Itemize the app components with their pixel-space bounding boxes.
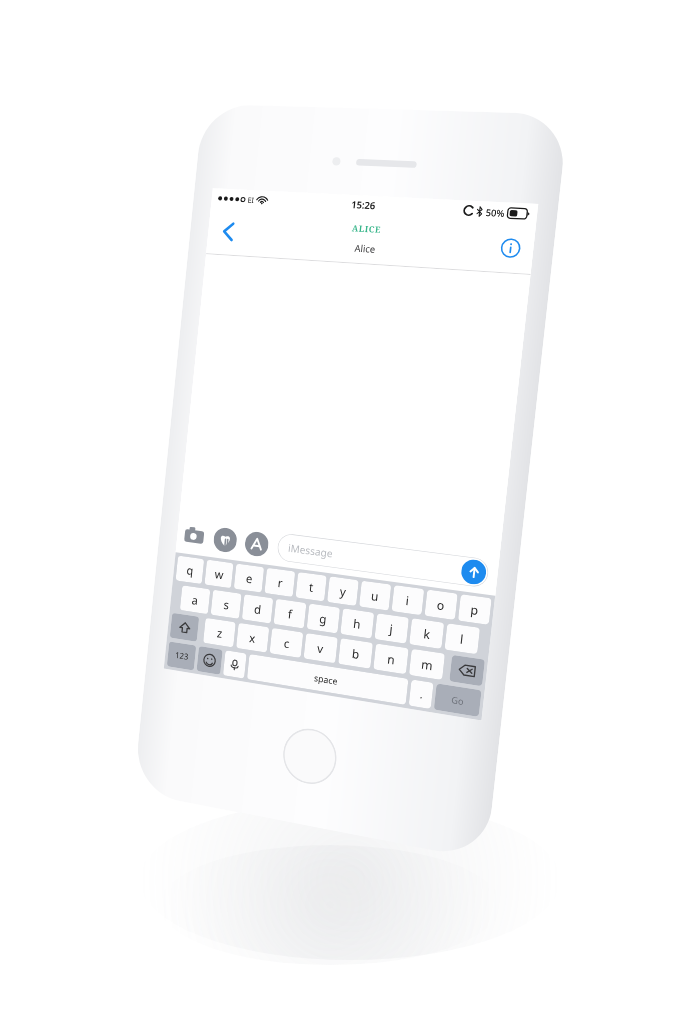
button[interactable]: Backspace [449,655,485,686]
staticText: 123 [175,649,189,663]
button[interactable]: Details [494,232,526,263]
button[interactable]: o [424,589,458,620]
staticText: EI [247,195,255,205]
staticText: iMessage [287,541,334,561]
staticText: b [351,645,361,662]
staticText: z [216,625,223,641]
button[interactable]: e [234,563,264,593]
button[interactable]: Home [280,724,339,789]
staticText: o [436,596,446,613]
staticText: 15:26 [351,198,377,212]
staticText: Alice [354,242,376,256]
button[interactable]: 123 [167,641,196,670]
staticText: x [249,629,257,646]
button[interactable]: c [269,628,303,658]
button[interactable]: x [236,623,269,653]
button[interactable]: z [203,618,236,647]
button[interactable]: Back [210,214,245,249]
button[interactable]: a [180,585,210,614]
button[interactable]: ALICE [349,222,382,256]
button[interactable]: n [373,643,409,674]
button[interactable]: Emoji [196,646,223,675]
staticText: j [389,620,394,637]
button[interactable]: space [247,654,408,705]
button[interactable]: f [273,599,306,629]
button[interactable]: y [327,576,359,606]
button[interactable]: r [264,568,295,597]
button[interactable]: d [242,594,273,624]
staticText: p [470,601,480,618]
button[interactable]: g [307,603,340,633]
staticText: v [316,640,325,656]
staticText: y [339,583,348,600]
staticText: r [277,574,283,590]
staticText: n [387,650,396,667]
button[interactable]: b [338,638,373,669]
button[interactable]: k [409,618,444,649]
staticText: u [370,587,380,604]
button[interactable]: p [458,594,492,625]
button[interactable]: Send [460,558,487,586]
button[interactable]: s [211,590,242,619]
button[interactable]: t [295,572,327,601]
staticText: . [419,687,424,702]
button[interactable]: v [303,633,338,663]
staticText: Go [451,693,464,707]
button[interactable]: h [340,608,374,639]
button[interactable]: i [391,585,424,615]
button[interactable]: . [409,679,434,709]
button[interactable]: l [444,623,480,654]
staticText: w [214,566,225,582]
button[interactable]: w [204,559,233,588]
staticText: m [420,655,434,673]
button[interactable]: App Store [244,530,270,558]
staticText: 50% [485,206,505,219]
staticText: h [352,615,362,632]
staticText: s [223,596,230,612]
button[interactable]: Shift [170,613,199,642]
staticText: d [253,601,262,617]
staticText: e [245,570,253,586]
button[interactable]: Go [434,683,482,717]
button[interactable]: iMessage [276,533,490,588]
button[interactable]: q [175,556,204,584]
staticText: t [308,578,315,595]
staticText: l [459,630,465,647]
staticText: a [191,592,199,608]
button[interactable]: u [359,581,391,611]
staticText: q [186,562,195,578]
staticText: g [319,610,328,627]
staticText: f [287,605,294,622]
button[interactable]: Camera [182,522,207,549]
button[interactable]: j [374,613,409,644]
button[interactable]: Dictation [223,650,247,679]
staticText: space [314,671,339,687]
staticText: ALICE [351,222,382,236]
staticText: i [405,592,411,608]
button[interactable]: m [409,649,445,680]
button[interactable]: Digital Touch [212,526,238,554]
staticText: k [423,625,431,642]
staticText: c [283,635,290,651]
